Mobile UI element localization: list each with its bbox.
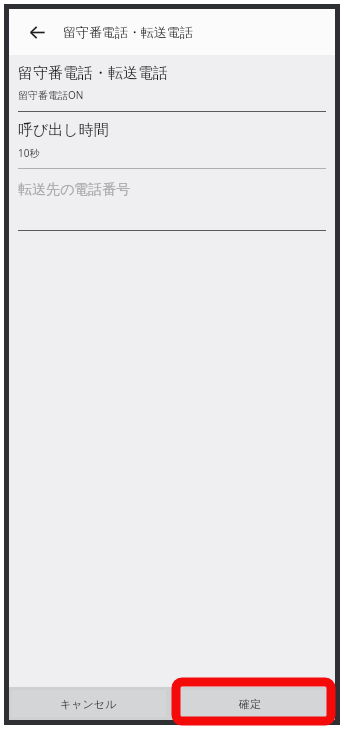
button[interactable]: キャンセル [11,690,166,717]
staticText: 留守番電話・転送電話 [63,24,193,40]
staticText: キャンセル [60,697,117,711]
staticText: 10秒 [18,146,40,160]
button[interactable]: Back [19,14,55,50]
staticText: 留守番電話・転送電話 [18,64,168,83]
staticText: 転送先の電話番号 [18,181,131,199]
button[interactable]: 呼び出し時間 [9,112,335,168]
staticText: 呼び出し時間 [18,121,109,140]
staticText: 留守番電話ON [18,88,84,102]
button[interactable]: 留守番電話・転送電話 [9,55,335,111]
button[interactable]: 確定 [172,690,327,717]
button[interactable]: 転送先の電話番号 [9,169,335,230]
staticText: 確定 [239,697,261,711]
